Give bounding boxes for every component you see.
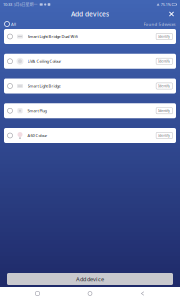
staticText: 10:33: [3, 2, 12, 7]
staticText: Identify: [158, 109, 170, 113]
button[interactable]: All: [4, 19, 16, 29]
button[interactable]: Recents: [22, 288, 52, 298]
button[interactable]: A60 Colour: [4, 128, 176, 143]
staticText: All: [11, 21, 16, 27]
staticText: Add devices: [71, 9, 109, 19]
staticText: Identify: [158, 34, 170, 39]
staticText: 75.1%: [161, 2, 171, 7]
button[interactable]: LiVA Ceiling Colour: [4, 54, 176, 69]
button[interactable]: Home: [75, 288, 105, 298]
staticText: A60 Colour: [27, 133, 47, 138]
button[interactable]: Smart Plug: [4, 103, 176, 118]
button[interactable]: Smart Light Bridge: [4, 78, 176, 93]
button[interactable]: Smart Light Bridge Dual Wifi: [4, 29, 176, 44]
staticText: Smart Light Bridge: [27, 83, 60, 89]
button[interactable]: Add device: [7, 273, 173, 285]
staticText: Found 5 devices: [143, 21, 175, 27]
staticText: Identify: [158, 84, 170, 88]
staticText: Identify: [158, 133, 170, 138]
staticText: 3月6日星期一: [13, 2, 37, 7]
button[interactable]: Close: [166, 8, 180, 19]
staticText: Add device: [76, 275, 104, 283]
staticText: Smart Light Bridge Dual Wifi: [27, 34, 77, 39]
button[interactable]: Back: [127, 288, 157, 298]
staticText: Identify: [158, 59, 170, 63]
staticText: Smart Plug: [27, 108, 46, 113]
staticText: LiVA Ceiling Colour: [27, 58, 61, 64]
